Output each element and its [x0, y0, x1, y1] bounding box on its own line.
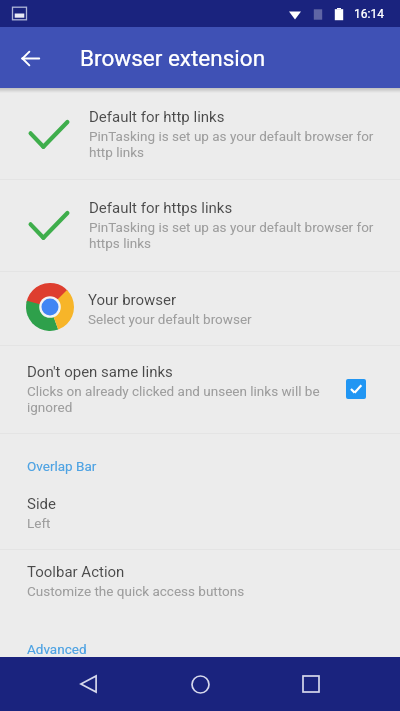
button[interactable]: Home: [182, 666, 218, 702]
button[interactable]: Side: [0, 489, 400, 545]
staticText: 16:14: [354, 7, 384, 21]
staticText: Customize the quick access buttons: [27, 583, 245, 599]
staticText: Side: [27, 495, 56, 513]
staticText: Select your default browser: [88, 311, 252, 327]
staticText: PinTasking is set up as your default bro…: [89, 128, 374, 144]
staticText: https links: [89, 235, 151, 251]
button[interactable]: Toolbar Action: [0, 557, 400, 613]
staticText: PinTasking is set up as your default bro…: [89, 219, 374, 235]
staticText: Left: [27, 515, 51, 531]
staticText: Don't open same links: [27, 363, 173, 381]
staticText: Clicks on already clicked and unseen lin…: [27, 383, 320, 399]
staticText: Toolbar Action: [27, 563, 125, 581]
staticText: ignored: [27, 399, 73, 415]
button[interactable]: Don't open same links: [0, 346, 400, 432]
staticText: Default for http links: [89, 108, 225, 126]
button[interactable]: Back: [8, 36, 52, 80]
button[interactable]: Back: [70, 666, 106, 702]
staticText: Advanced: [27, 641, 87, 657]
staticText: Browser extension: [80, 45, 266, 71]
button[interactable]: Overlap Bar: [0, 453, 400, 479]
button[interactable]: Advanced: [0, 636, 400, 662]
staticText: http links: [89, 144, 145, 160]
staticText: Your browser: [88, 291, 177, 309]
staticText: Default for https links: [89, 199, 233, 217]
button[interactable]: Default for https links: [0, 180, 400, 270]
button[interactable]: Default for http links: [0, 89, 400, 179]
button[interactable]: Recent apps: [293, 666, 329, 702]
button[interactable]: Your browser: [0, 272, 400, 345]
staticText: Overlap Bar: [27, 458, 97, 474]
